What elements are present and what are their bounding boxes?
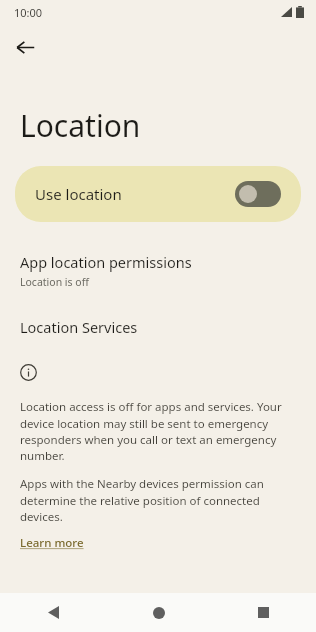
staticText: Location Services — [20, 317, 138, 337]
staticText: Learn more — [20, 535, 84, 551]
button[interactable]: Home — [106, 593, 211, 632]
button[interactable]: Back — [6, 28, 44, 66]
staticText: Location — [20, 105, 141, 146]
button[interactable]: App location permissions — [0, 252, 316, 289]
staticText: 10:00 — [14, 5, 43, 20]
button[interactable]: Back — [0, 593, 106, 632]
staticText: Location access is off for apps and serv… — [20, 399, 300, 463]
button[interactable]: Use location toggle — [235, 181, 281, 207]
staticText: App location permissions — [20, 252, 192, 272]
button[interactable]: Learn more — [20, 535, 84, 551]
button[interactable]: Use location — [15, 166, 301, 222]
staticText: Use location — [35, 184, 122, 204]
staticText: Location is off — [20, 275, 89, 289]
button[interactable]: Recent apps — [211, 593, 316, 632]
staticText: Apps with the Nearby devices permission … — [20, 476, 302, 524]
